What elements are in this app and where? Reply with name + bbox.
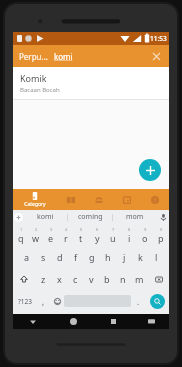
staticText: 11:53 bbox=[150, 34, 167, 43]
button[interactable]: Members bbox=[85, 189, 113, 210]
staticText: coming bbox=[78, 212, 103, 222]
button[interactable]: l bbox=[148, 246, 164, 268]
button[interactable]: j bbox=[116, 246, 132, 268]
button[interactable]: z bbox=[35, 268, 51, 290]
staticText: r bbox=[64, 232, 68, 244]
staticText: l bbox=[155, 251, 158, 263]
staticText: komi bbox=[54, 51, 73, 62]
staticText: 3 bbox=[50, 227, 53, 232]
button[interactable]: Calendar bbox=[113, 189, 141, 210]
button[interactable]: . bbox=[131, 290, 145, 312]
button[interactable]: s bbox=[35, 246, 52, 268]
button[interactable]: Back bbox=[13, 314, 53, 329]
button[interactable]: b bbox=[99, 268, 115, 290]
button[interactable]: Emoji bbox=[50, 290, 64, 312]
staticText: Perpu... bbox=[19, 51, 48, 62]
staticText: , bbox=[42, 296, 45, 307]
button[interactable]: h bbox=[100, 246, 116, 268]
button[interactable]: 7 bbox=[105, 224, 121, 246]
staticText: o bbox=[142, 232, 148, 244]
button[interactable]: komi bbox=[23, 210, 67, 224]
staticText: h bbox=[105, 251, 111, 263]
button[interactable]: 2 bbox=[28, 224, 43, 246]
staticText: q bbox=[18, 232, 24, 244]
button[interactable]: a bbox=[18, 246, 35, 268]
staticText: u bbox=[110, 232, 116, 244]
button[interactable]: 0 bbox=[153, 224, 169, 246]
button[interactable]: Voice input bbox=[157, 210, 169, 224]
staticText: x bbox=[57, 273, 62, 285]
staticText: y bbox=[95, 232, 100, 244]
staticText: 2 bbox=[35, 227, 38, 232]
staticText: komi bbox=[37, 212, 54, 222]
staticText: Bacaan Bocah bbox=[20, 86, 60, 94]
staticText: Category bbox=[24, 201, 46, 208]
staticText: 6 bbox=[96, 227, 99, 232]
staticText: w bbox=[32, 232, 40, 244]
staticText: p bbox=[158, 232, 164, 244]
button[interactable]: Search bbox=[150, 294, 165, 309]
button[interactable]: n bbox=[115, 268, 131, 290]
button[interactable]: k bbox=[132, 246, 148, 268]
button[interactable]: Info bbox=[141, 189, 169, 210]
staticText: 4 bbox=[65, 227, 68, 232]
button[interactable]: , bbox=[36, 290, 50, 312]
button[interactable]: Hide keyboard bbox=[133, 314, 169, 329]
staticText: j bbox=[123, 251, 126, 263]
staticText: 9 bbox=[144, 227, 147, 232]
button[interactable]: c bbox=[67, 268, 83, 290]
button[interactable]: 8 bbox=[121, 224, 137, 246]
staticText: f bbox=[74, 251, 78, 263]
button[interactable]: Books bbox=[57, 189, 85, 210]
staticText: 1 bbox=[20, 227, 23, 232]
staticText: d bbox=[57, 251, 63, 263]
button[interactable]: 4 bbox=[58, 224, 73, 246]
button[interactable]: mom bbox=[113, 210, 157, 224]
staticText: 0 bbox=[160, 227, 163, 232]
button[interactable]: d bbox=[52, 246, 68, 268]
button[interactable]: Home bbox=[53, 314, 93, 329]
staticText: 8 bbox=[128, 227, 131, 232]
button[interactable]: g bbox=[84, 246, 100, 268]
button[interactable]: Recents bbox=[93, 314, 133, 329]
staticText: v bbox=[89, 273, 94, 285]
staticText: k bbox=[138, 251, 143, 263]
staticText: n bbox=[120, 273, 126, 285]
staticText: ?123 bbox=[18, 297, 32, 306]
button[interactable]: 6 bbox=[89, 224, 105, 246]
button[interactable]: coming bbox=[68, 210, 112, 224]
staticText: g bbox=[89, 251, 95, 263]
staticText: 7 bbox=[112, 227, 115, 232]
button[interactable]: Category bbox=[13, 189, 57, 210]
button[interactable]: 1 bbox=[13, 224, 28, 246]
staticText: s bbox=[41, 251, 46, 263]
staticText: c bbox=[73, 273, 78, 285]
button[interactable]: Clear search bbox=[149, 49, 163, 63]
button[interactable]: x bbox=[51, 268, 67, 290]
staticText: Komik bbox=[20, 72, 47, 84]
button[interactable]: 5 bbox=[73, 224, 89, 246]
button[interactable]: 9 bbox=[137, 224, 153, 246]
staticText: e bbox=[48, 232, 54, 244]
button[interactable]: m bbox=[131, 268, 147, 290]
staticText: 5 bbox=[80, 227, 83, 232]
staticText: a bbox=[24, 251, 30, 263]
button[interactable]: f bbox=[68, 246, 84, 268]
button[interactable]: Backspace bbox=[147, 268, 169, 290]
button[interactable]: ?123 bbox=[13, 290, 36, 312]
button[interactable]: Add bbox=[139, 159, 161, 181]
staticText: m bbox=[135, 273, 144, 285]
button[interactable]: 3 bbox=[43, 224, 58, 246]
staticText: mom bbox=[126, 212, 144, 222]
button[interactable]: Komik bbox=[13, 67, 169, 99]
button[interactable]: v bbox=[83, 268, 99, 290]
staticText: i bbox=[128, 232, 131, 244]
staticText: . bbox=[137, 296, 140, 307]
staticText: b bbox=[104, 273, 110, 285]
staticText: z bbox=[41, 273, 46, 285]
staticText: t bbox=[79, 232, 83, 244]
button[interactable]: Shift bbox=[13, 268, 35, 290]
